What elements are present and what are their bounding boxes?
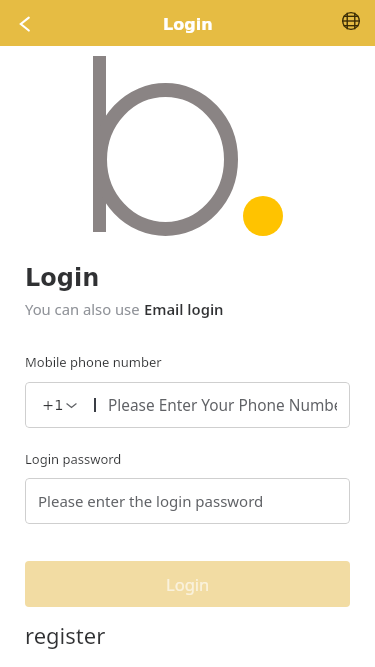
button[interactable]: Back <box>0 0 46 46</box>
staticText: register <box>25 620 106 650</box>
staticText: You can also use <box>25 299 144 319</box>
staticText: Email login <box>144 299 224 319</box>
staticText: Please enter the login password <box>38 491 264 511</box>
staticText: Login password <box>25 450 122 468</box>
button[interactable]: +1 <box>25 382 350 428</box>
button[interactable]: Login <box>25 561 350 607</box>
staticText: Login <box>166 573 210 595</box>
button[interactable]: register <box>25 620 106 650</box>
staticText: Mobile phone number <box>25 353 162 371</box>
staticText: Please Enter Your Phone Number <box>108 395 337 416</box>
staticText: +1 <box>42 397 64 414</box>
button[interactable]: Please enter the login password <box>25 478 350 524</box>
button[interactable]: Language <box>329 0 375 46</box>
button[interactable]: Email login <box>144 299 224 319</box>
staticText: Login <box>163 15 213 34</box>
staticText: Login <box>25 264 100 292</box>
